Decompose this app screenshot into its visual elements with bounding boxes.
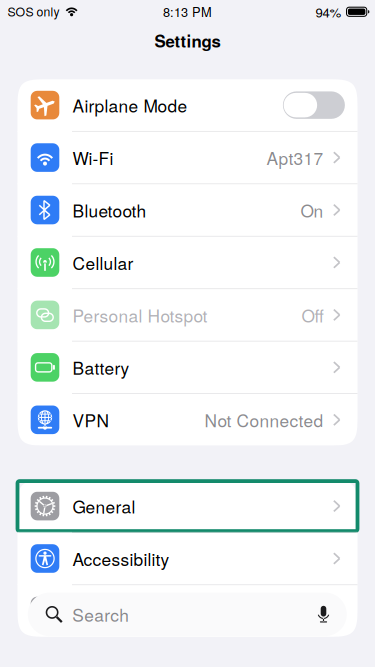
staticText: Airplane Mode — [72, 93, 187, 117]
button[interactable]: Bluetooth — [17, 184, 357, 236]
staticText: 94% — [315, 2, 341, 21]
staticText: Accessibility — [72, 546, 169, 571]
staticText: Off — [301, 302, 323, 327]
staticText: On — [300, 198, 323, 222]
button[interactable]: Search — [28, 592, 347, 636]
button[interactable]: Control Center — [17, 585, 357, 637]
staticText: Apt317 — [266, 145, 323, 170]
button[interactable]: Accessibility — [17, 533, 357, 584]
button[interactable]: Cellular — [17, 237, 357, 288]
button[interactable]: General — [17, 480, 357, 532]
button[interactable]: VPN — [17, 394, 357, 446]
button[interactable]: Battery — [17, 342, 357, 393]
staticText: Search — [72, 602, 129, 627]
staticText: Cellular — [72, 250, 133, 275]
button[interactable]: Personal Hotspot — [17, 289, 357, 341]
staticText: 8:13 PM — [163, 2, 212, 21]
staticText: General — [72, 494, 135, 518]
staticText: VPN — [72, 407, 109, 432]
button[interactable]: Wi-Fi — [17, 132, 357, 183]
staticText: SOS only — [7, 2, 59, 20]
staticText: Personal Hotspot — [72, 302, 207, 327]
button[interactable]: Airplane Mode — [17, 79, 357, 131]
staticText: Wi-Fi — [72, 145, 113, 170]
staticText: Not Connected — [204, 407, 323, 432]
staticText: Control Center — [72, 599, 189, 623]
staticText: Bluetooth — [72, 198, 146, 222]
staticText: Settings — [154, 29, 220, 53]
staticText: Battery — [72, 355, 129, 380]
